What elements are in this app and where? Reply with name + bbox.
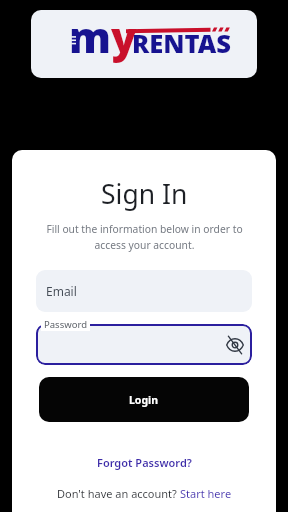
button[interactable]: Email bbox=[36, 270, 252, 312]
staticText: my bbox=[69, 10, 137, 65]
button[interactable]: Login bbox=[39, 377, 249, 422]
staticText: Start here bbox=[180, 486, 232, 501]
staticText: Password bbox=[44, 318, 87, 331]
staticText: Email bbox=[46, 283, 77, 299]
staticText: Sign In bbox=[101, 176, 188, 212]
button[interactable]: Start here bbox=[180, 486, 232, 501]
button[interactable]: Show password bbox=[36, 324, 252, 365]
staticText: Forgot Password? bbox=[97, 455, 192, 470]
staticText: RENTAS bbox=[132, 26, 232, 61]
button[interactable]: Forgot Password? bbox=[93, 453, 196, 472]
staticText: Login bbox=[129, 393, 159, 407]
staticText: Fill out the information below in order … bbox=[46, 222, 243, 252]
button[interactable]: Show password bbox=[223, 333, 247, 357]
staticText: Don't have an account? bbox=[57, 486, 180, 501]
